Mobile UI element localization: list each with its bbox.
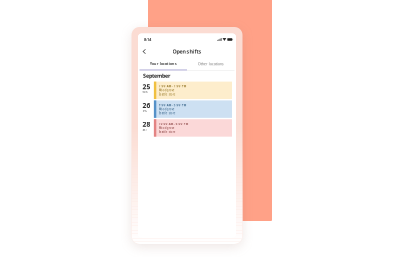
button[interactable]: 25 [138, 82, 236, 99]
staticText: 8:14 [144, 37, 151, 42]
staticText: 28 [142, 120, 150, 129]
staticText: 26 [142, 101, 150, 110]
button[interactable]: Other locations [187, 57, 234, 70]
staticText: Woodgrove [159, 107, 175, 111]
staticText: WED [142, 90, 148, 94]
staticText: Your locations [150, 61, 177, 66]
staticText: 10:00 AM - 6:00 PM [159, 122, 188, 126]
staticText: Woodgrove [159, 89, 175, 92]
staticText: 26 [142, 101, 150, 110]
staticText: Seattle store [159, 130, 176, 134]
staticText: Woodgrove [159, 107, 175, 111]
staticText: Other locations [198, 61, 224, 66]
button[interactable]: 28 [138, 119, 236, 137]
staticText: Other locations [198, 61, 224, 66]
staticText: SAT [142, 128, 146, 131]
button[interactable]: Back [142, 47, 151, 56]
button[interactable]: 25 [138, 82, 236, 99]
staticText: WED [142, 90, 148, 94]
staticText: 25 [142, 82, 150, 91]
staticText: Your locations [150, 61, 177, 66]
button[interactable]: 28 [138, 119, 236, 137]
staticText: 25 [142, 82, 150, 91]
button[interactable]: 26 [138, 100, 236, 118]
staticText: THU [142, 109, 147, 113]
staticText: Seattle store [159, 93, 176, 96]
button[interactable]: 26 [138, 100, 236, 118]
staticText: 7:00 AM - 1:00 PM [159, 84, 186, 88]
staticText: Woodgrove [159, 89, 175, 92]
staticText: Seattle store [159, 111, 176, 115]
button[interactable]: Back [142, 47, 151, 56]
staticText: Open shifts [172, 48, 201, 55]
staticText: 28 [142, 120, 150, 129]
staticText: Woodgrove [159, 126, 175, 130]
staticText: Seattle store [159, 130, 176, 134]
staticText: September [143, 72, 170, 79]
staticText: Seattle store [159, 111, 176, 115]
staticText: Seattle store [159, 93, 176, 96]
staticText: 10:00 AM - 6:00 PM [159, 122, 188, 126]
staticText: 8:14 [144, 37, 151, 42]
staticText: THU [142, 109, 147, 113]
staticText: 9:00 AM - 5:00 PM [159, 103, 186, 107]
button[interactable]: Your locations [139, 57, 187, 70]
staticText: Open shifts [172, 48, 201, 55]
staticText: Woodgrove [159, 126, 175, 130]
staticText: SAT [142, 128, 146, 131]
button[interactable]: Your locations [139, 57, 187, 70]
staticText: 7:00 AM - 1:00 PM [159, 84, 186, 88]
button[interactable]: Other locations [187, 57, 234, 70]
staticText: September [143, 72, 170, 79]
staticText: 9:00 AM - 5:00 PM [159, 103, 186, 107]
